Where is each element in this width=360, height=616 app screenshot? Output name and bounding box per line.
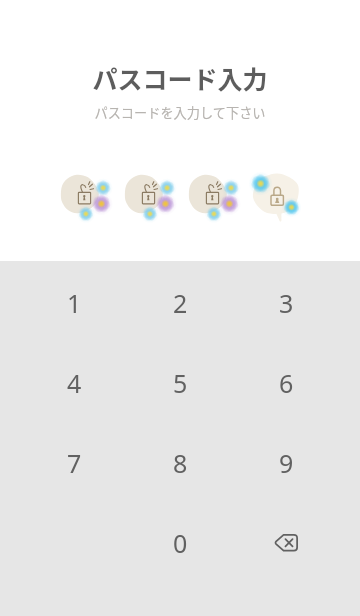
staticText: 3 [279,286,294,320]
staticText: 4 [67,366,82,400]
button[interactable]: 5 [127,346,233,420]
staticText: 9 [279,446,294,480]
staticText: 8 [173,446,188,480]
button[interactable]: 2 [127,266,233,340]
staticText: パスコード入力 [92,60,268,96]
staticText: 5 [173,366,188,400]
button[interactable]: 8 [127,426,233,500]
button[interactable]: 9 [233,426,339,500]
button[interactable]: 7 [21,426,127,500]
staticText: 1 [67,286,82,320]
button[interactable]: Delete [233,506,339,580]
staticText: パスコードを入力して下さい [94,103,266,122]
button[interactable]: 3 [233,266,339,340]
button[interactable]: 4 [21,346,127,420]
staticText: 0 [173,526,188,560]
button[interactable]: 6 [233,346,339,420]
button[interactable]: 0 [127,506,233,580]
button[interactable]: 1 [21,266,127,340]
staticText: 6 [279,366,294,400]
staticText: 7 [67,446,82,480]
staticText: 2 [173,286,188,320]
